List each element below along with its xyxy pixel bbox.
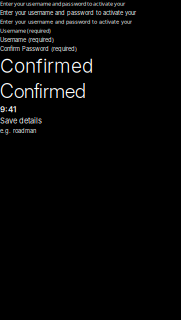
staticText: Confirmed xyxy=(0,79,86,103)
staticText: Confirmed xyxy=(0,54,93,77)
staticText: Enter your username and password to acti… xyxy=(0,18,132,25)
staticText: Enter your username and password to acti… xyxy=(0,0,125,7)
staticText: e.g. roadman xyxy=(0,127,36,134)
staticText: Save details xyxy=(0,116,42,125)
staticText: Confirm Password (required) xyxy=(0,45,77,52)
staticText: Username (required) xyxy=(0,27,51,34)
staticText: Enter your username and password to acti… xyxy=(0,9,136,16)
staticText: 9:41 xyxy=(0,105,16,114)
staticText: Username (required) xyxy=(0,36,54,43)
